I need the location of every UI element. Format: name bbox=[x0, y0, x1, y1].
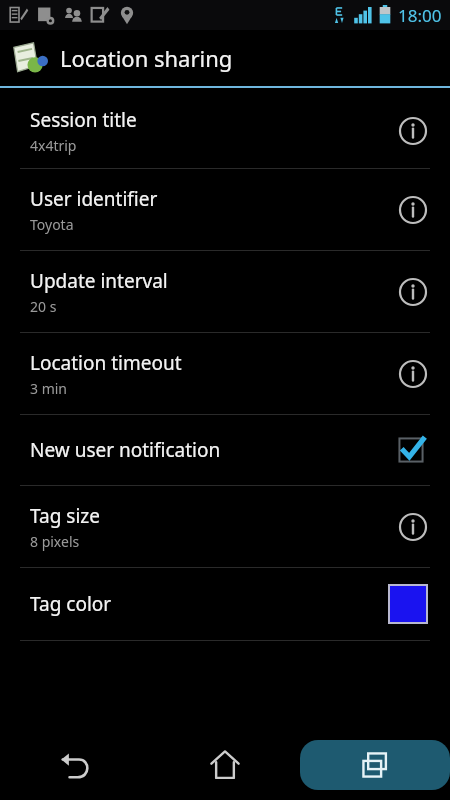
staticText: 20 s bbox=[30, 297, 57, 316]
staticText: Location timeout bbox=[30, 350, 182, 376]
other: Info bbox=[398, 277, 428, 307]
staticText: 18:00 bbox=[398, 4, 442, 27]
button[interactable]: Update interval bbox=[0, 251, 450, 332]
staticText: New user notification bbox=[30, 437, 221, 463]
staticText: User identifier bbox=[30, 186, 158, 212]
staticText: Tag color bbox=[30, 591, 112, 617]
button[interactable]: Recent apps bbox=[300, 730, 450, 800]
staticText: Update interval bbox=[30, 268, 168, 294]
staticText: Tag size bbox=[30, 503, 100, 529]
button[interactable]: Home bbox=[150, 730, 300, 800]
button[interactable]: Location timeout bbox=[0, 333, 450, 414]
staticText: 8 pixels bbox=[30, 532, 80, 551]
other: Info bbox=[398, 116, 428, 146]
button[interactable]: Tag color bbox=[0, 568, 450, 640]
button[interactable]: Back bbox=[0, 730, 150, 800]
other: Info bbox=[398, 195, 428, 225]
button[interactable]: New user notification bbox=[0, 415, 450, 485]
button[interactable]: Session title bbox=[0, 94, 450, 168]
staticText: Session title bbox=[30, 107, 137, 133]
staticText: Location sharing bbox=[60, 43, 233, 73]
staticText: 4x4trip bbox=[30, 136, 77, 155]
other: Info bbox=[398, 359, 428, 389]
button[interactable]: User identifier bbox=[0, 169, 450, 250]
other: Info bbox=[398, 512, 428, 542]
staticText: 3 min bbox=[30, 379, 68, 398]
button[interactable]: Tag size bbox=[0, 486, 450, 567]
staticText: Toyota bbox=[30, 215, 74, 234]
